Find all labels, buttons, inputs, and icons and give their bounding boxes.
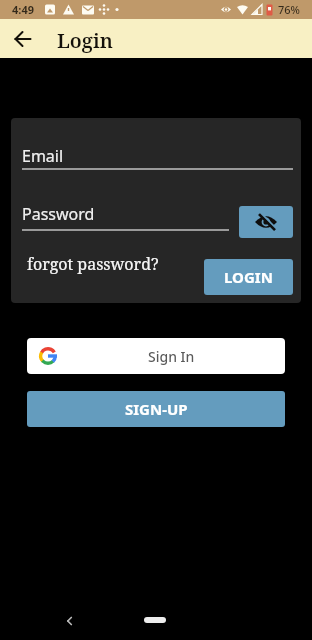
button[interactable]	[58, 610, 80, 632]
staticText: Password	[22, 203, 95, 225]
button[interactable]	[0, 19, 46, 58]
staticText: Email	[22, 145, 64, 167]
staticText: 76%	[278, 2, 300, 17]
button[interactable]: SIGN-UP	[27, 391, 285, 427]
button[interactable]: forgot password?	[27, 253, 159, 275]
staticText: LOGIN	[224, 267, 273, 287]
staticText: 4:49	[12, 2, 34, 17]
button[interactable]: Sign In	[27, 338, 285, 374]
staticText: Login	[57, 27, 113, 54]
button[interactable]: LOGIN	[204, 259, 293, 295]
staticText: SIGN-UP	[125, 399, 188, 419]
staticText: Sign In	[148, 347, 195, 366]
button[interactable]	[239, 206, 293, 238]
